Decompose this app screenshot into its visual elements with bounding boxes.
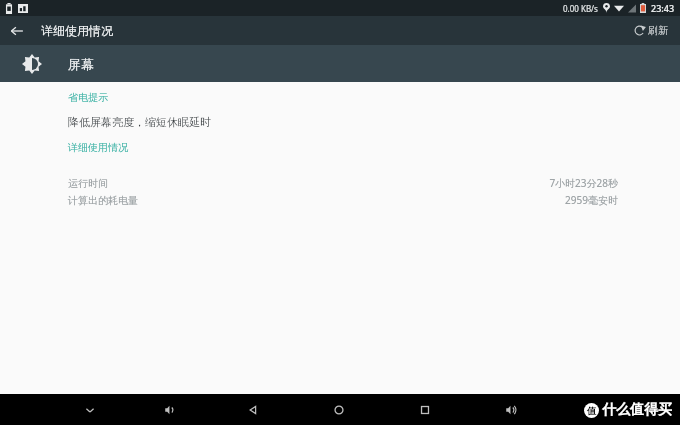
staticText: 省电提示 [68,91,108,104]
staticText: 详细使用情况 [41,23,113,38]
staticText: 详细使用情况 [68,141,128,154]
button[interactable]: Volume up [495,394,527,425]
button[interactable]: Back [0,16,34,45]
button[interactable]: 刷新 [630,20,672,41]
staticText: 运行时间 [68,177,108,190]
staticText: 值 [587,405,596,416]
staticText: 0.00 KB/s [563,3,598,14]
button[interactable]: 计算出的耗电量 [0,193,680,207]
button[interactable]: Recent apps [409,394,441,425]
button[interactable]: Back [237,394,269,425]
staticText: 7小时23分28秒 [549,176,618,190]
staticText: 屏幕 [68,56,94,72]
button[interactable]: 省电提示 [0,89,680,106]
button[interactable]: Volume down [154,394,186,425]
button[interactable]: Hide [74,394,106,425]
staticText: 什么值得买 [602,401,672,419]
button[interactable]: 详细使用情况 [0,139,680,156]
button[interactable]: 运行时间 [0,176,680,190]
staticText: 刷新 [648,24,668,37]
button[interactable]: 屏幕 [0,45,680,82]
staticText: 计算出的耗电量 [68,194,138,207]
staticText: 23:43 [651,2,675,14]
staticText: 降低屏幕亮度，缩短休眠延时 [68,115,211,129]
staticText: 2959毫安时 [565,193,618,207]
button[interactable]: Home [323,394,355,425]
